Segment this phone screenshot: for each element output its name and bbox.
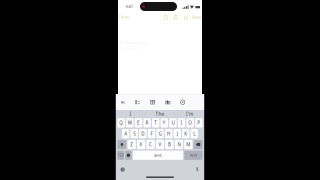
staticText: B — [168, 141, 171, 148]
button[interactable]: Next keyboard — [125, 151, 132, 160]
button[interactable]: Delete — [194, 140, 203, 149]
button[interactable]: S — [130, 129, 138, 138]
staticText: I — [129, 111, 131, 117]
button[interactable]: Done — [190, 13, 204, 21]
button[interactable]: I’m — [175, 110, 204, 118]
button[interactable]: New Note — [182, 13, 190, 21]
staticText: H — [167, 131, 170, 137]
button[interactable]: Checklist — [134, 99, 141, 105]
staticText: A — [124, 131, 127, 137]
button[interactable]: Share — [162, 13, 170, 21]
button[interactable]: H — [165, 129, 172, 138]
button[interactable]: Table — [149, 99, 156, 105]
staticText: 9:41 — [126, 4, 133, 9]
button[interactable]: Markup — [179, 99, 186, 105]
staticText: I — [181, 120, 183, 126]
button[interactable]: U — [169, 118, 177, 127]
button[interactable]: Emoji — [116, 166, 125, 173]
staticText: J — [177, 131, 178, 137]
button[interactable]: Z — [127, 140, 136, 149]
button[interactable]: T — [152, 118, 159, 127]
button[interactable]: F — [148, 129, 155, 138]
staticText: N — [177, 141, 180, 148]
staticText: F — [150, 131, 152, 137]
button[interactable]: C — [146, 140, 155, 149]
staticText: V — [158, 141, 161, 148]
button[interactable]: E — [135, 118, 142, 127]
button[interactable]: K — [182, 129, 189, 138]
button[interactable]: D — [139, 129, 147, 138]
staticText: Z — [130, 141, 133, 148]
button[interactable]: space — [133, 151, 183, 160]
button[interactable]: V — [156, 140, 164, 149]
button[interactable]: Dictate — [196, 166, 204, 173]
staticText: Y — [163, 120, 166, 126]
button[interactable]: Delete — [172, 13, 180, 21]
staticText: I’m — [186, 111, 193, 117]
button[interactable]: O — [186, 118, 194, 127]
staticText: The — [155, 111, 164, 117]
staticText: P — [197, 120, 200, 126]
button[interactable]: W — [126, 118, 133, 127]
staticText: R — [146, 120, 149, 126]
button[interactable]: Notes — [116, 13, 131, 21]
staticText: S — [133, 131, 135, 137]
staticText: O — [188, 120, 192, 126]
button[interactable]: Camera — [164, 99, 171, 105]
button[interactable]: Shift — [117, 140, 126, 149]
button[interactable]: N — [175, 140, 183, 149]
button[interactable]: Y — [160, 118, 168, 127]
staticText: Notes — [121, 14, 131, 19]
button[interactable]: G — [156, 129, 164, 138]
staticText: 123 — [118, 153, 124, 157]
button[interactable]: next — [184, 151, 203, 160]
staticText: D — [141, 131, 144, 137]
staticText: W — [128, 120, 132, 126]
staticText: Aa — [121, 100, 125, 104]
staticText: T — [154, 120, 157, 126]
staticText: Q — [119, 120, 123, 126]
button[interactable]: B — [165, 140, 174, 149]
staticText: E — [137, 120, 140, 126]
button[interactable]: Aa — [119, 99, 126, 105]
staticText: X — [140, 141, 143, 148]
button[interactable]: J — [173, 129, 181, 138]
button[interactable]: P — [195, 118, 203, 127]
button[interactable]: Q — [117, 118, 125, 127]
staticText: M — [186, 141, 190, 148]
staticText: space — [154, 153, 162, 157]
button[interactable]: I — [178, 118, 185, 127]
staticText: C — [149, 141, 152, 148]
button[interactable]: 123 — [117, 151, 124, 160]
staticText: L — [193, 131, 195, 137]
button[interactable]: X — [137, 140, 145, 149]
staticText: Weekend plans — [124, 40, 149, 45]
staticText: K — [184, 131, 187, 137]
button[interactable]: The — [145, 110, 175, 118]
button[interactable]: I — [116, 110, 145, 118]
button[interactable]: A — [122, 129, 129, 138]
button[interactable]: R — [143, 118, 151, 127]
button[interactable]: L — [191, 129, 198, 138]
staticText: G — [158, 131, 161, 137]
staticText: U — [171, 120, 174, 126]
staticText: Done — [192, 14, 201, 19]
staticText: next — [190, 153, 197, 157]
button[interactable]: M — [184, 140, 192, 149]
